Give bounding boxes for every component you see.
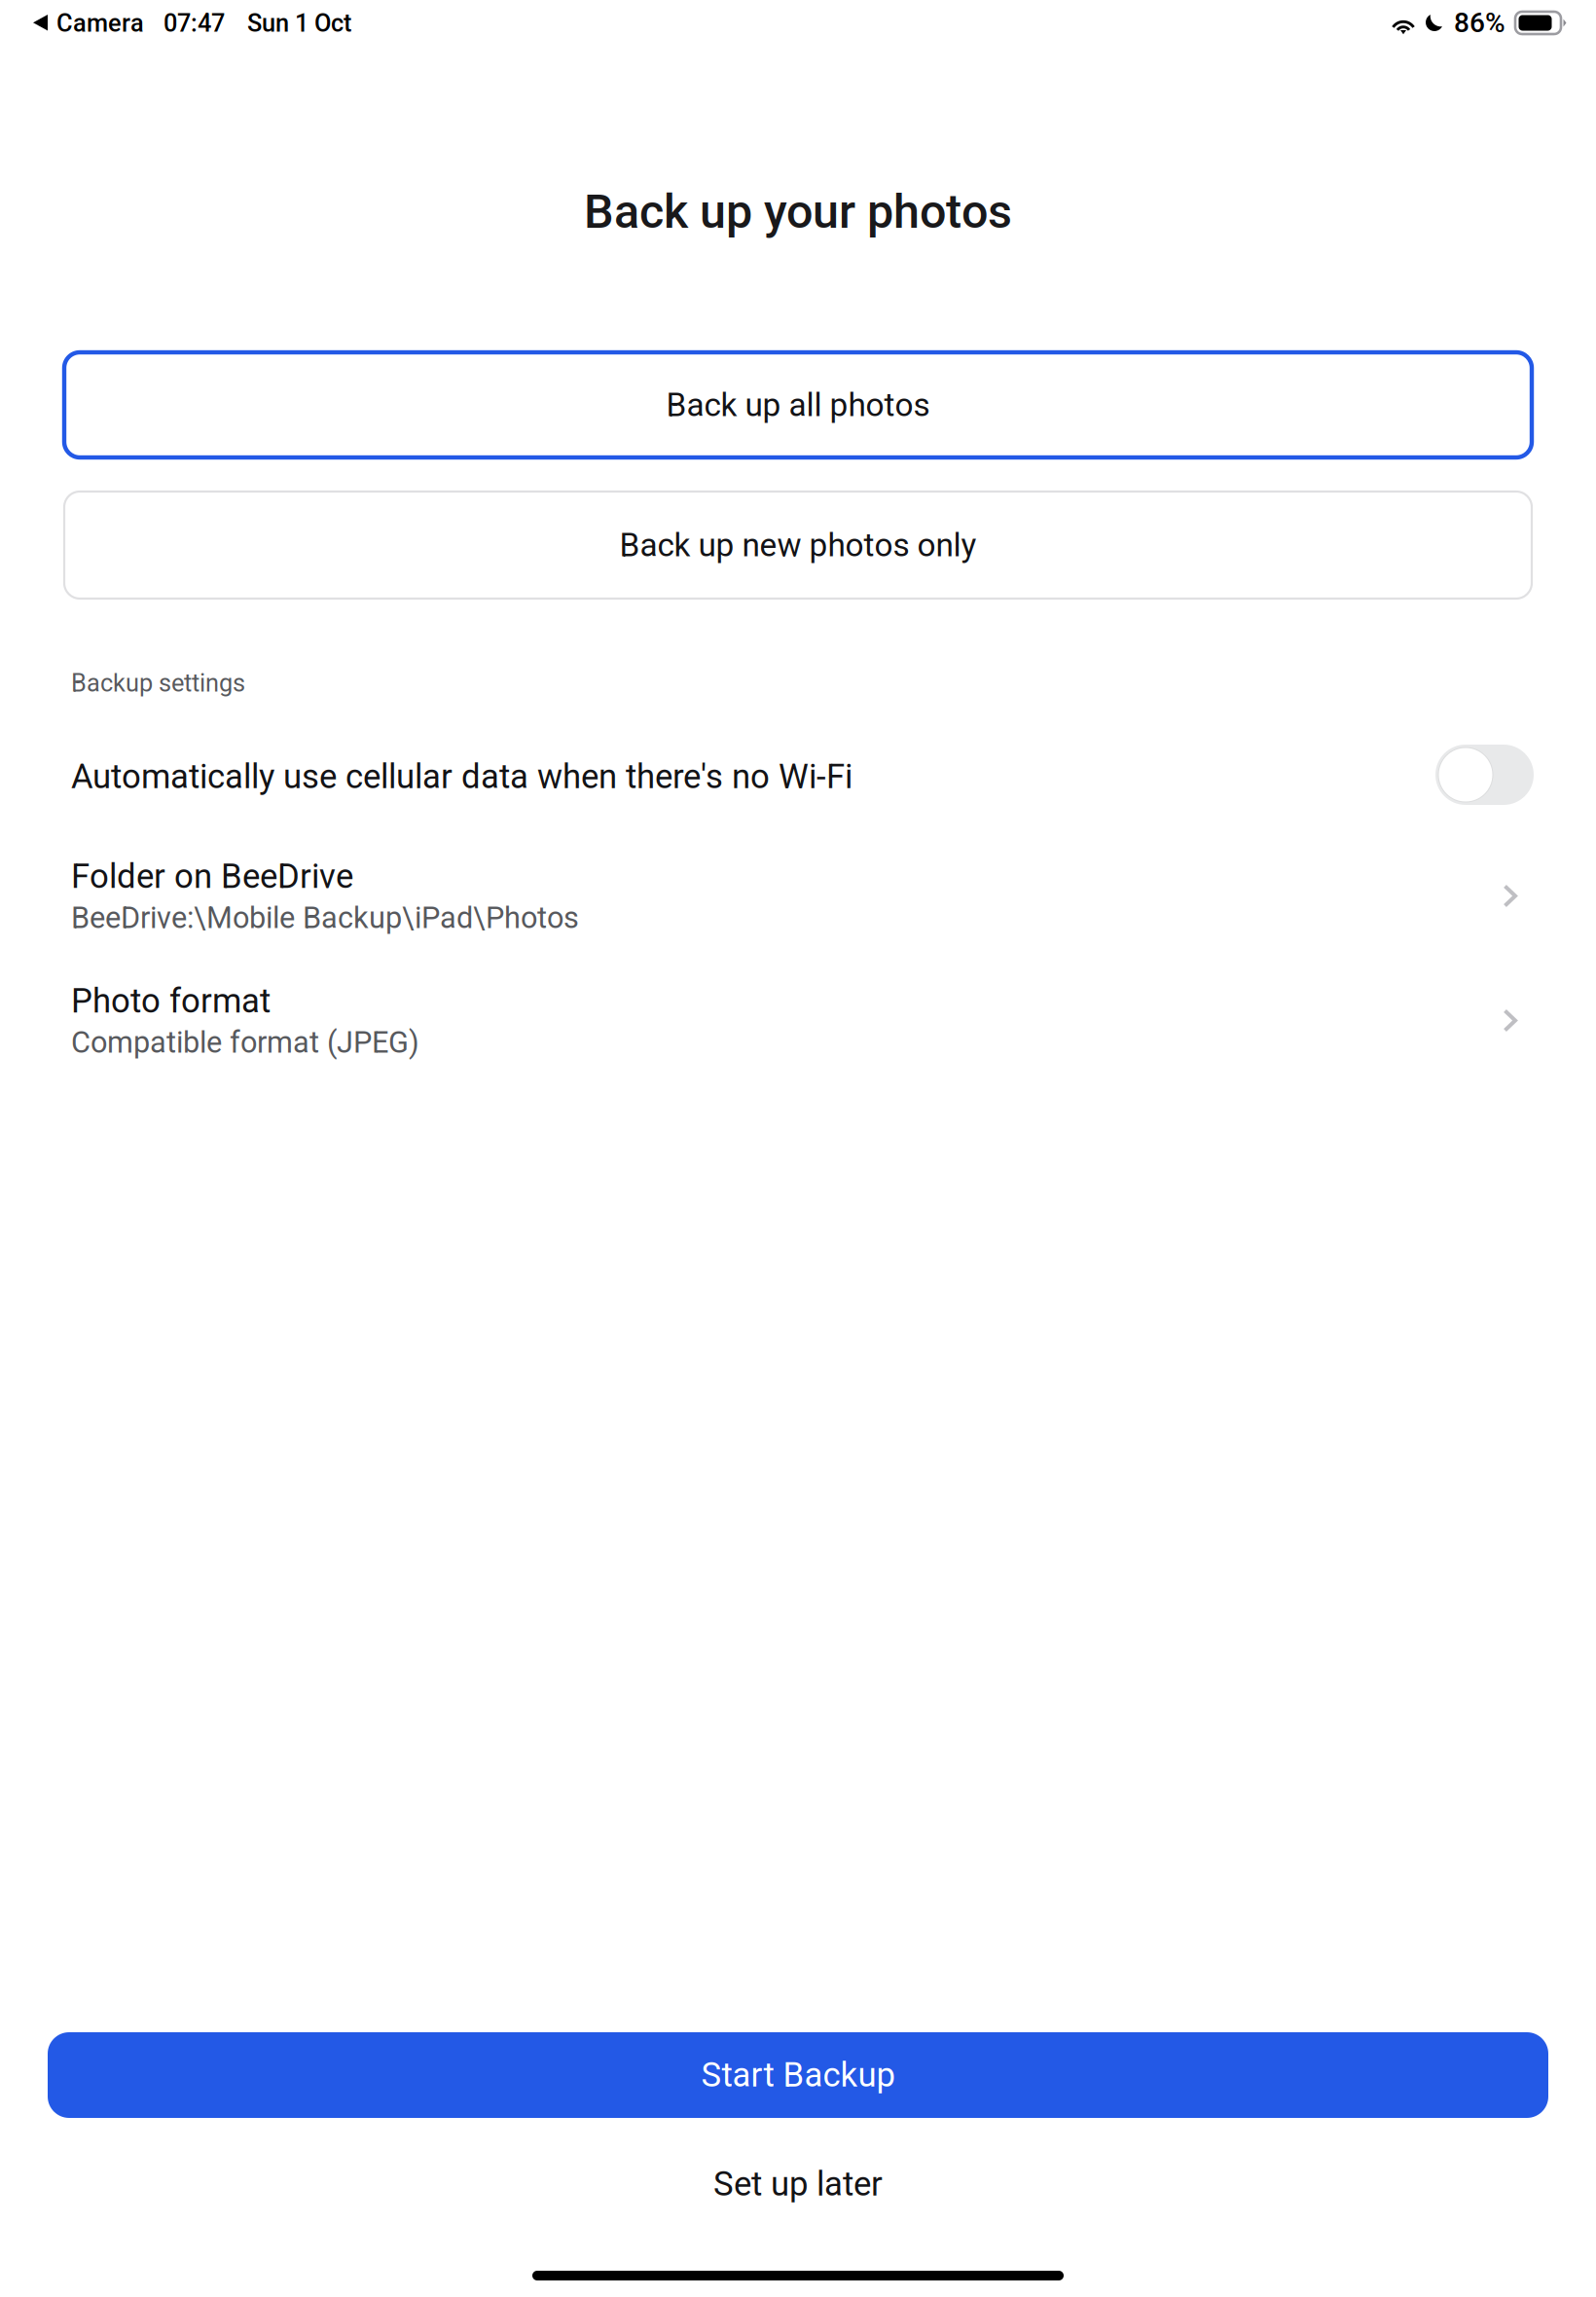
button[interactable]: Photo format [71,981,1525,1090]
staticText: Back up all photos [666,386,930,424]
button[interactable]: Automatically use cellular data when the… [71,755,1534,823]
staticText: Set up later [713,2164,883,2204]
button[interactable]: Back up new photos only [64,492,1532,599]
button[interactable]: Back up all photos [64,352,1532,457]
staticText: Automatically use cellular data when the… [71,757,852,796]
staticText: Compatible format (JPEG) [71,1025,419,1060]
button[interactable]: Start Backup [48,2032,1548,2118]
staticText: BeeDrive:\Mobile Backup\iPad\Photos [71,900,579,935]
staticText: 86% [1454,7,1505,39]
button[interactable]: Folder on BeeDrive [71,857,1525,966]
staticText: Back up new photos only [619,526,977,564]
staticText: Start Backup [701,2055,895,2095]
staticText: Back up your photos [584,184,1012,239]
button[interactable]: Set up later [0,2139,1596,2229]
staticText: Photo format [71,981,271,1021]
button[interactable]: Camera [33,9,145,40]
staticText: Folder on BeeDrive [71,857,353,896]
staticText: Camera [56,9,144,38]
staticText: Sun 1 Oct [247,9,351,38]
staticText: Backup settings [71,669,245,698]
staticText: 07:47 [163,9,225,38]
